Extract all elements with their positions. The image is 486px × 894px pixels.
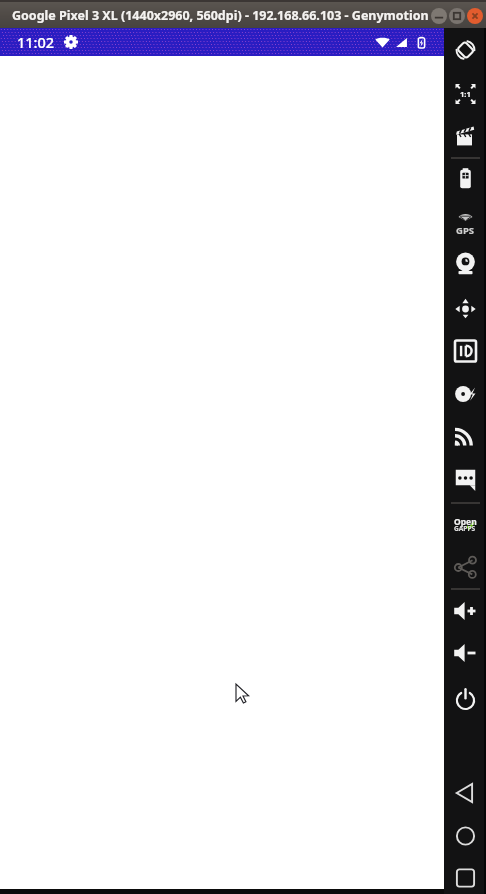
button[interactable]: Screen record	[449, 121, 481, 153]
button[interactable]: Volume down	[449, 637, 481, 669]
button[interactable]: Minimize	[431, 8, 447, 24]
staticText: 11:02	[17, 32, 55, 52]
button[interactable]: Back	[449, 777, 481, 809]
button[interactable]: Home	[449, 820, 481, 852]
button[interactable]: Volume up	[449, 595, 481, 627]
staticText: Open	[454, 516, 477, 528]
button[interactable]: Settings	[64, 35, 78, 49]
button[interactable]: Share	[449, 551, 481, 583]
staticText: GPS	[456, 224, 475, 237]
button[interactable]: GPS	[449, 205, 481, 237]
button[interactable]: Disk IO	[449, 378, 481, 410]
button[interactable]: Phone SMS	[449, 463, 481, 495]
button[interactable]: Power	[449, 683, 481, 715]
button[interactable]: Actual size	[449, 78, 481, 110]
button[interactable]: Rotate	[449, 34, 481, 66]
button[interactable]: Close	[467, 8, 483, 24]
button[interactable]: Maximize	[449, 8, 465, 24]
button[interactable]: Battery	[449, 163, 481, 195]
button[interactable]: Identifiers	[449, 335, 481, 367]
button[interactable]: Recents	[449, 862, 481, 894]
button[interactable]: Camera	[449, 248, 481, 280]
button[interactable]: Network	[449, 420, 481, 452]
staticText: GAPPS	[454, 524, 476, 533]
staticText: Google Pixel 3 XL (1440x2960, 560dpi) - …	[12, 7, 429, 24]
button[interactable]: Accelerometer	[449, 293, 481, 325]
staticText: 1:1	[460, 89, 471, 99]
button[interactable]: Open GApps	[449, 508, 481, 540]
